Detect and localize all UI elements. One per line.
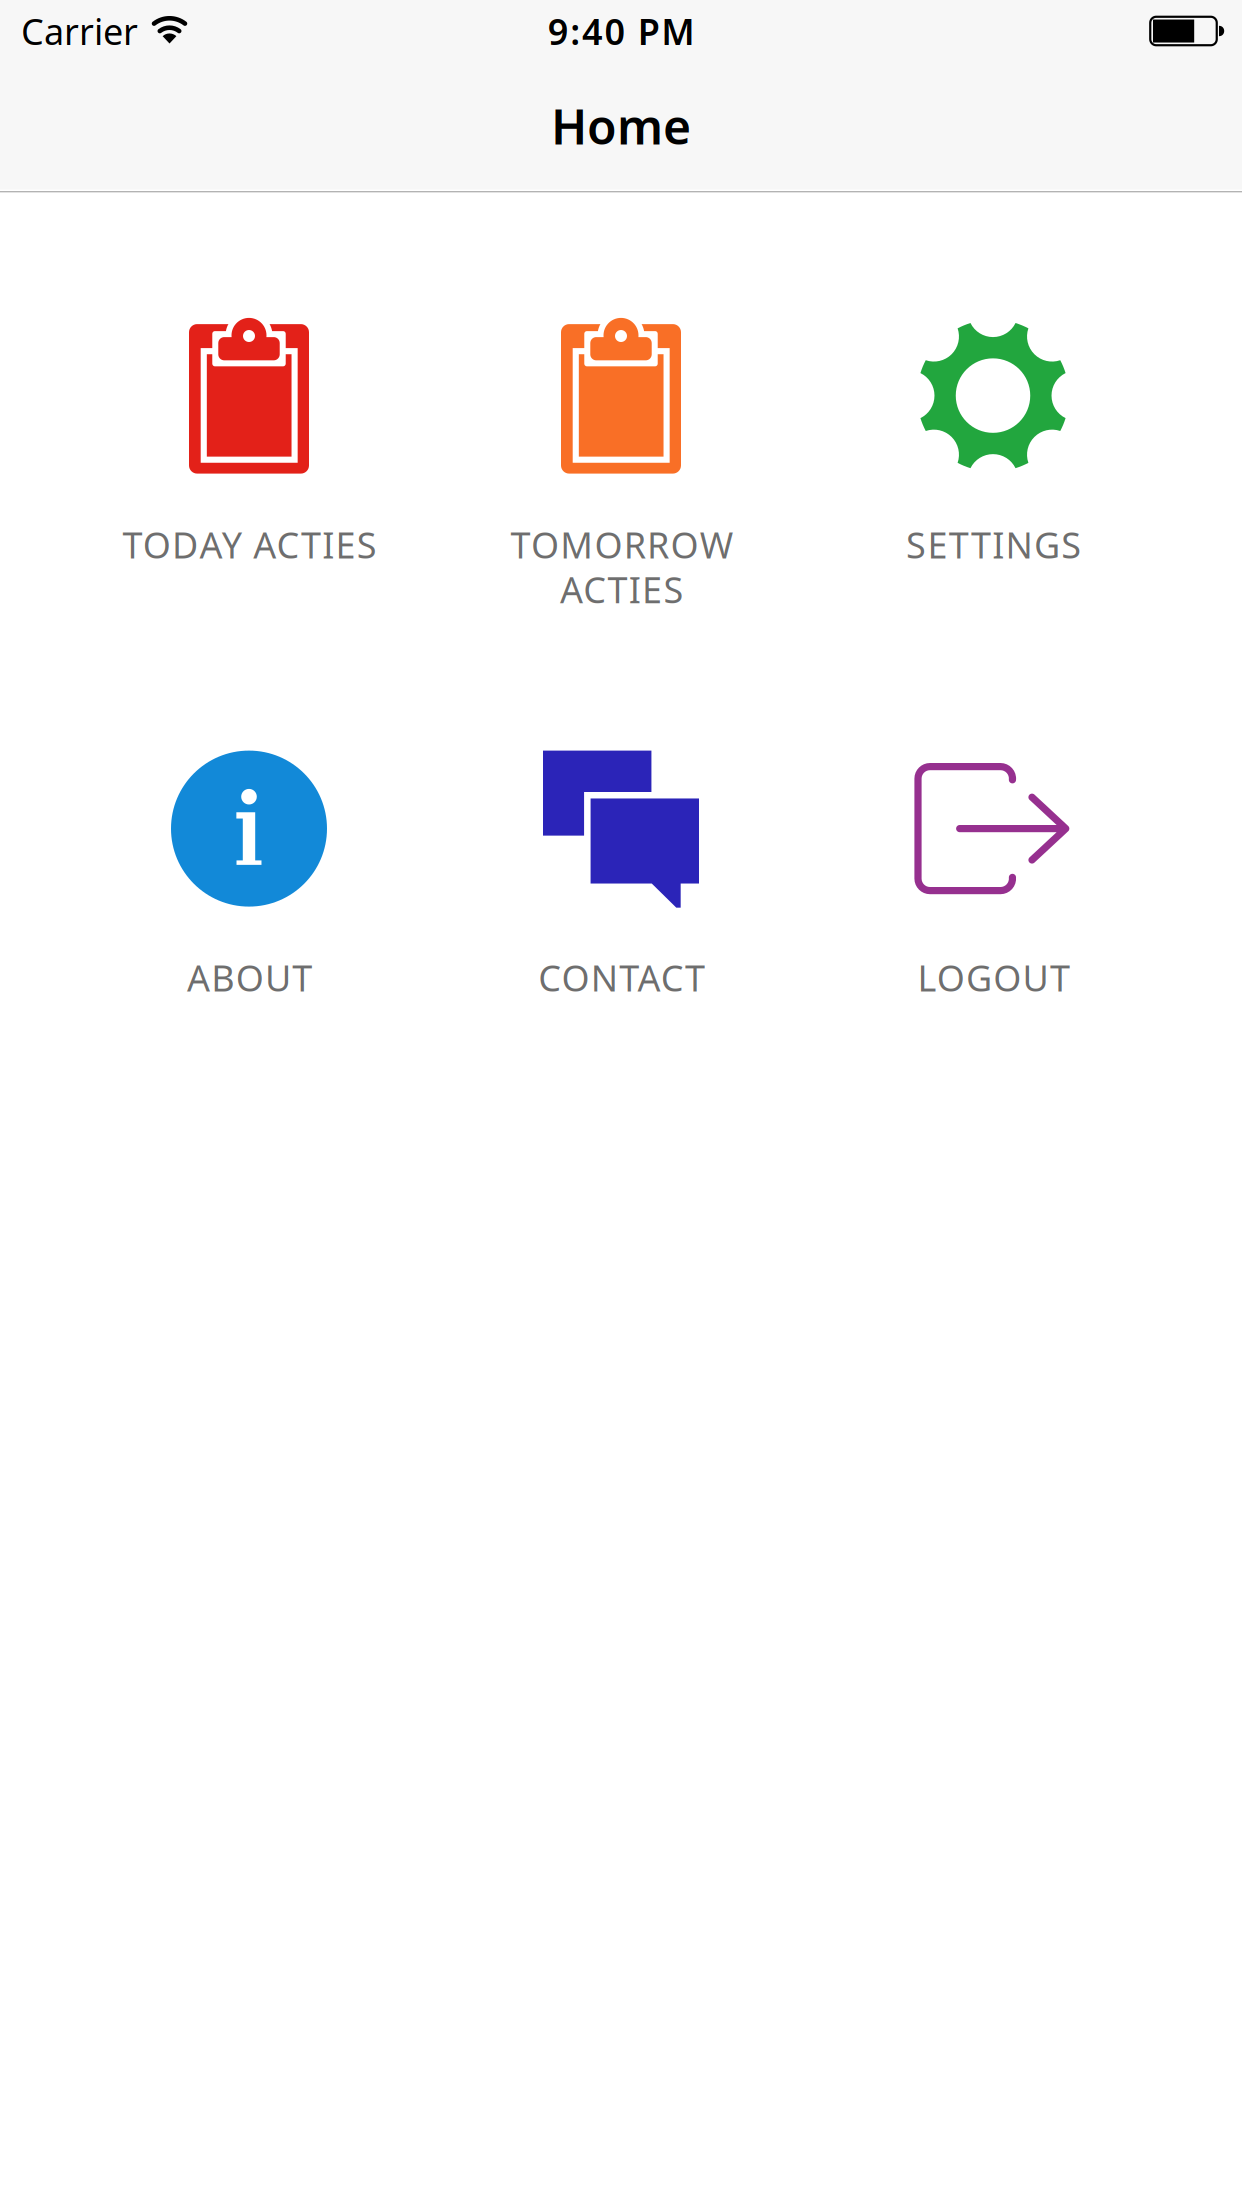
staticText: 9:40 PM [548,7,694,55]
staticText: ABOUT [186,954,312,1001]
staticText: Home [551,94,691,158]
staticText: TOMORROW ACTIES [510,521,732,613]
button[interactable]: TODAY ACTIES [63,318,435,750]
button[interactable]: ABOUT [63,751,435,1183]
staticText: TODAY ACTIES [122,521,376,568]
button[interactable]: TOMORROW ACTIES [435,318,807,750]
staticText: LOGOUT [917,954,1069,1001]
button[interactable]: CONTACT [435,751,807,1183]
staticText: Carrier [21,7,138,55]
staticText: SETTINGS [905,521,1081,568]
button[interactable]: LOGOUT [807,751,1179,1183]
staticText: CONTACT [538,954,704,1001]
button[interactable]: SETTINGS [807,318,1179,750]
